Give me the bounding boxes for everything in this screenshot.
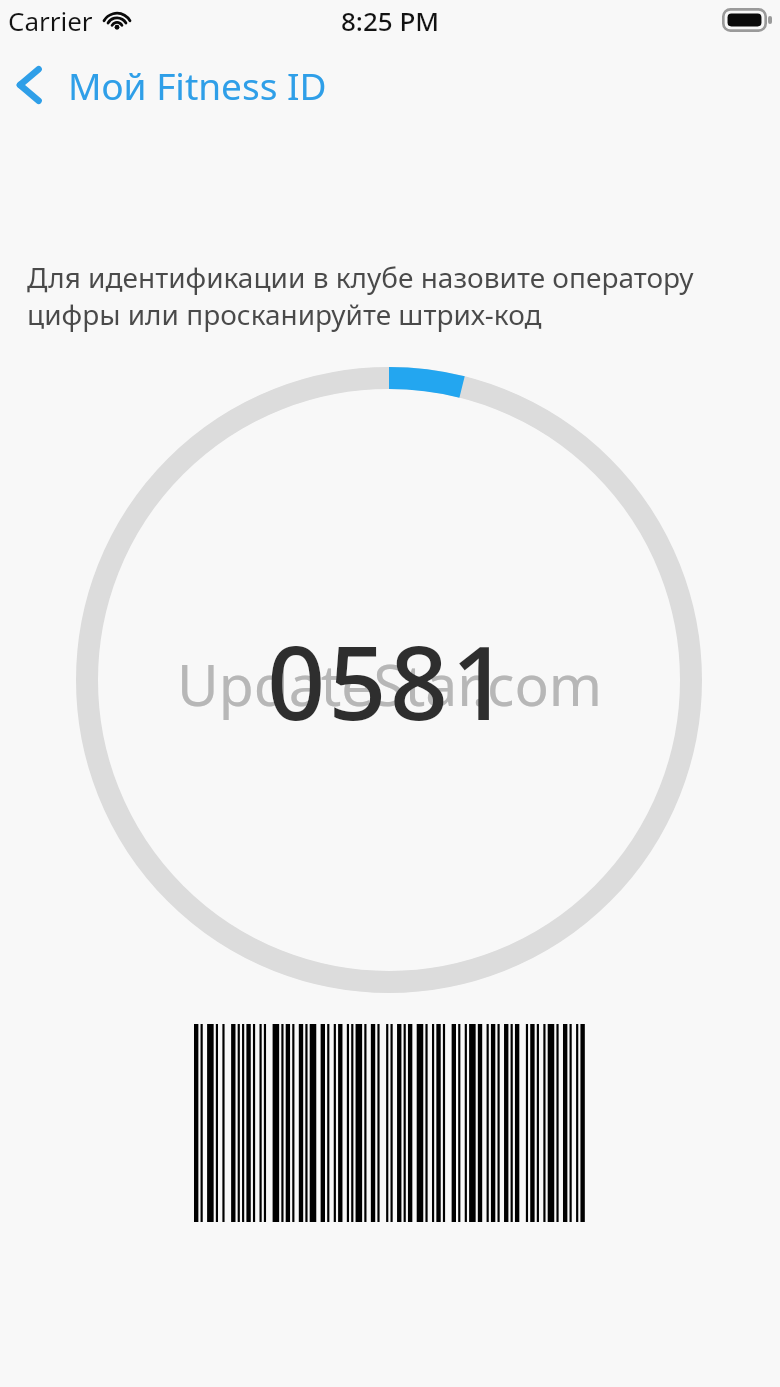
staticText: Для идентификации в клубе назовите опера…: [27, 258, 744, 333]
staticText: 8:25 PM: [341, 3, 440, 38]
staticText: Carrier: [8, 3, 93, 38]
staticText: UpdateStar.com: [177, 645, 603, 723]
other: Barcode: [194, 1024, 587, 1222]
staticText: Мой Fitness ID: [68, 60, 327, 110]
button[interactable]: Back: [0, 50, 341, 120]
staticText: 0581: [267, 611, 513, 750]
other: Back: [14, 63, 44, 107]
